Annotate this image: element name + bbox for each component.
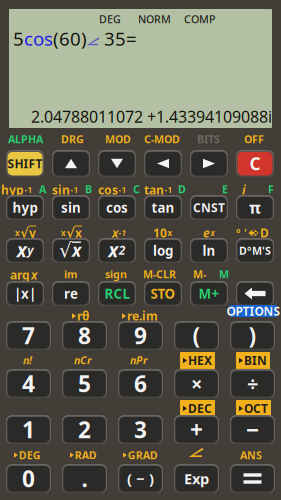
button[interactable]: Square root [52, 238, 90, 263]
staticText: arg [10, 267, 30, 283]
staticText: 0 [22, 463, 35, 493]
staticText: ° ' [236, 226, 247, 240]
button[interactable]: ÷ [230, 369, 275, 398]
button[interactable]: Left [144, 150, 182, 177]
button[interactable]: Exp [174, 464, 219, 493]
staticText: STO [150, 285, 175, 302]
staticText: GRAD [128, 448, 158, 462]
button[interactable]: 9 [118, 321, 163, 350]
staticText: NORM [138, 12, 171, 26]
button[interactable]: log [144, 238, 182, 263]
button[interactable]: ( [174, 321, 219, 350]
button[interactable]: 6 [118, 369, 163, 398]
staticText: × [191, 370, 202, 397]
staticText: cos [106, 199, 128, 216]
staticText: 6 [134, 368, 147, 398]
staticText: BIN [244, 352, 267, 368]
staticText: OPTIONS [226, 303, 280, 319]
button[interactable]: 8 [62, 321, 107, 350]
staticText: C [133, 182, 140, 196]
staticText: ) [248, 320, 256, 350]
button[interactable]: Up [52, 150, 90, 177]
staticText: M-CLR [143, 267, 176, 281]
staticText: e [203, 225, 210, 241]
staticText: x [167, 228, 172, 238]
button[interactable]: 4 [6, 369, 51, 398]
button[interactable]: M+ [190, 281, 228, 306]
staticText: 2 [119, 242, 126, 258]
button[interactable]: hyp [6, 195, 44, 220]
staticText: 8 [78, 320, 91, 350]
button[interactable]: tan [144, 195, 182, 220]
staticText: cos [98, 182, 118, 198]
button[interactable]: 3 [118, 415, 163, 444]
staticText: 4 [22, 368, 35, 398]
button[interactable]: ( − ) [118, 464, 163, 493]
button[interactable]: 2 [62, 415, 107, 444]
staticText: n! [23, 353, 32, 367]
button[interactable]: . [62, 464, 107, 493]
staticText: 1 [22, 414, 35, 444]
button[interactable]: − [230, 415, 275, 444]
button[interactable]: SHIFT [6, 150, 44, 177]
staticText: x [210, 228, 214, 238]
button[interactable]: re [52, 281, 90, 306]
staticText: 2 [78, 414, 91, 444]
staticText: M+ [198, 285, 219, 302]
button[interactable]: ln [190, 238, 228, 263]
button[interactable]: |x| [6, 281, 44, 306]
staticText: 5 [78, 368, 91, 398]
button[interactable]: CNST [190, 195, 228, 220]
staticText: ÷ [247, 370, 258, 397]
button[interactable]: × [174, 369, 219, 398]
button[interactable]: π [236, 195, 274, 220]
staticText: re.im [127, 308, 158, 324]
button[interactable]: RCL [98, 281, 136, 306]
button[interactable]: C [236, 150, 274, 177]
staticText: DEG [99, 12, 121, 26]
staticText: x [15, 228, 20, 238]
button[interactable]: STO [144, 281, 182, 306]
button[interactable]: sin [52, 195, 90, 220]
button[interactable]: OPTIONS [230, 305, 277, 317]
button[interactable]: x [98, 238, 136, 263]
staticText: cos [24, 26, 53, 51]
staticText: -1 [118, 228, 125, 238]
button[interactable]: cos [98, 195, 136, 220]
staticText: -1 [118, 185, 126, 195]
button[interactable]: ) [230, 321, 275, 350]
staticText: C [249, 152, 260, 175]
staticText: -1 [70, 185, 78, 195]
button[interactable]: 1 [6, 415, 51, 444]
staticText: HEX [188, 352, 212, 368]
button[interactable]: 0 [6, 464, 51, 493]
staticText: sign [105, 267, 127, 281]
staticText: hyp [12, 199, 37, 216]
button[interactable]: D°M'S [236, 238, 274, 263]
button[interactable]: 7 [6, 321, 51, 350]
staticText: ALPHA [8, 132, 43, 146]
button[interactable]: Equals [230, 464, 275, 493]
button[interactable]: Backspace [236, 281, 274, 306]
staticText: OCT [244, 400, 268, 416]
staticText: x [75, 225, 82, 241]
staticText: COMP [184, 12, 216, 26]
staticText: 2.04788011072 +1.43394109088i [31, 106, 272, 127]
staticText: -1 [164, 185, 172, 195]
staticText: BITS [197, 132, 220, 146]
staticText: i [242, 182, 246, 198]
staticText: im [64, 267, 77, 281]
staticText: x [112, 225, 118, 241]
staticText: rθ [77, 308, 89, 324]
staticText: F [268, 182, 274, 196]
button[interactable]: Down [98, 150, 136, 177]
staticText: log [153, 242, 173, 259]
staticText: nPr [130, 353, 148, 367]
staticText: D [178, 182, 186, 196]
button[interactable]: x [6, 238, 44, 263]
staticText: √ [66, 225, 75, 240]
button[interactable]: Right [190, 150, 228, 177]
button[interactable]: 5 [62, 369, 107, 398]
button[interactable]: + [174, 415, 219, 444]
staticText: y [27, 242, 33, 258]
